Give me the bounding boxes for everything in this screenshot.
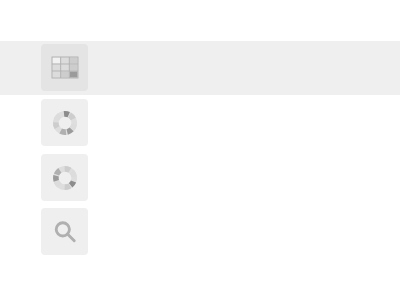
button[interactable]: Search [41, 208, 88, 255]
button[interactable]: Loading [41, 99, 88, 146]
button[interactable]: Refreshing [41, 154, 88, 201]
button[interactable]: Table view [41, 44, 88, 91]
